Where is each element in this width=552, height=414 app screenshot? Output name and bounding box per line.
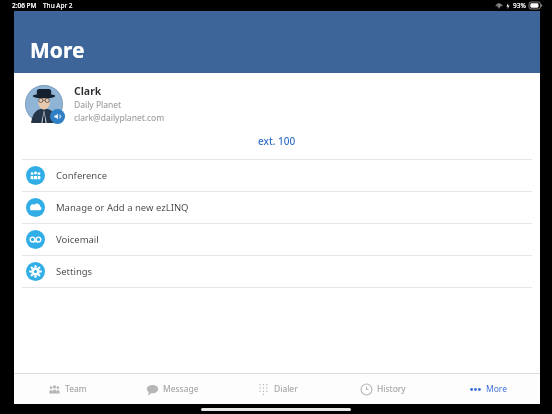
- staticText: More: [486, 383, 507, 395]
- button[interactable]: Message: [120, 374, 225, 404]
- staticText: History: [377, 383, 406, 395]
- staticText: 93%: [513, 1, 526, 10]
- staticText: Settings: [56, 265, 93, 278]
- staticText: Manage or Add a new ezLINQ: [56, 201, 189, 214]
- button[interactable]: Team: [14, 374, 120, 404]
- staticText: Message: [163, 383, 199, 395]
- staticText: Dialer: [274, 383, 298, 395]
- button[interactable]: Conference: [14, 160, 540, 191]
- button[interactable]: Settings: [14, 256, 540, 287]
- button[interactable]: History: [330, 374, 435, 404]
- button[interactable]: Manage or Add a new ezLINQ: [14, 192, 540, 223]
- staticText: Voicemail: [56, 233, 99, 246]
- staticText: 2:06 PM: [12, 1, 37, 10]
- staticText: Conference: [56, 169, 108, 182]
- button[interactable]: Clark: [14, 79, 540, 129]
- staticText: Thu Apr 2: [43, 1, 73, 10]
- staticText: clark@dailyplanet.com: [74, 112, 165, 124]
- staticText: Daily Planet: [74, 99, 122, 111]
- staticText: ext. 100: [258, 134, 296, 148]
- button[interactable]: Voicemail: [14, 224, 540, 255]
- staticText: More: [30, 36, 85, 65]
- button[interactable]: Dialer: [225, 374, 330, 404]
- staticText: Team: [65, 383, 87, 395]
- staticText: Clark: [74, 84, 102, 98]
- button[interactable]: More: [435, 374, 540, 404]
- button[interactable]: ext. 100: [14, 129, 540, 153]
